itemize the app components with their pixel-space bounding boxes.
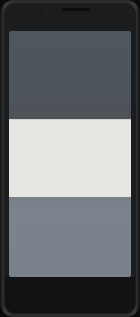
other: Front camera [45,12,51,18]
